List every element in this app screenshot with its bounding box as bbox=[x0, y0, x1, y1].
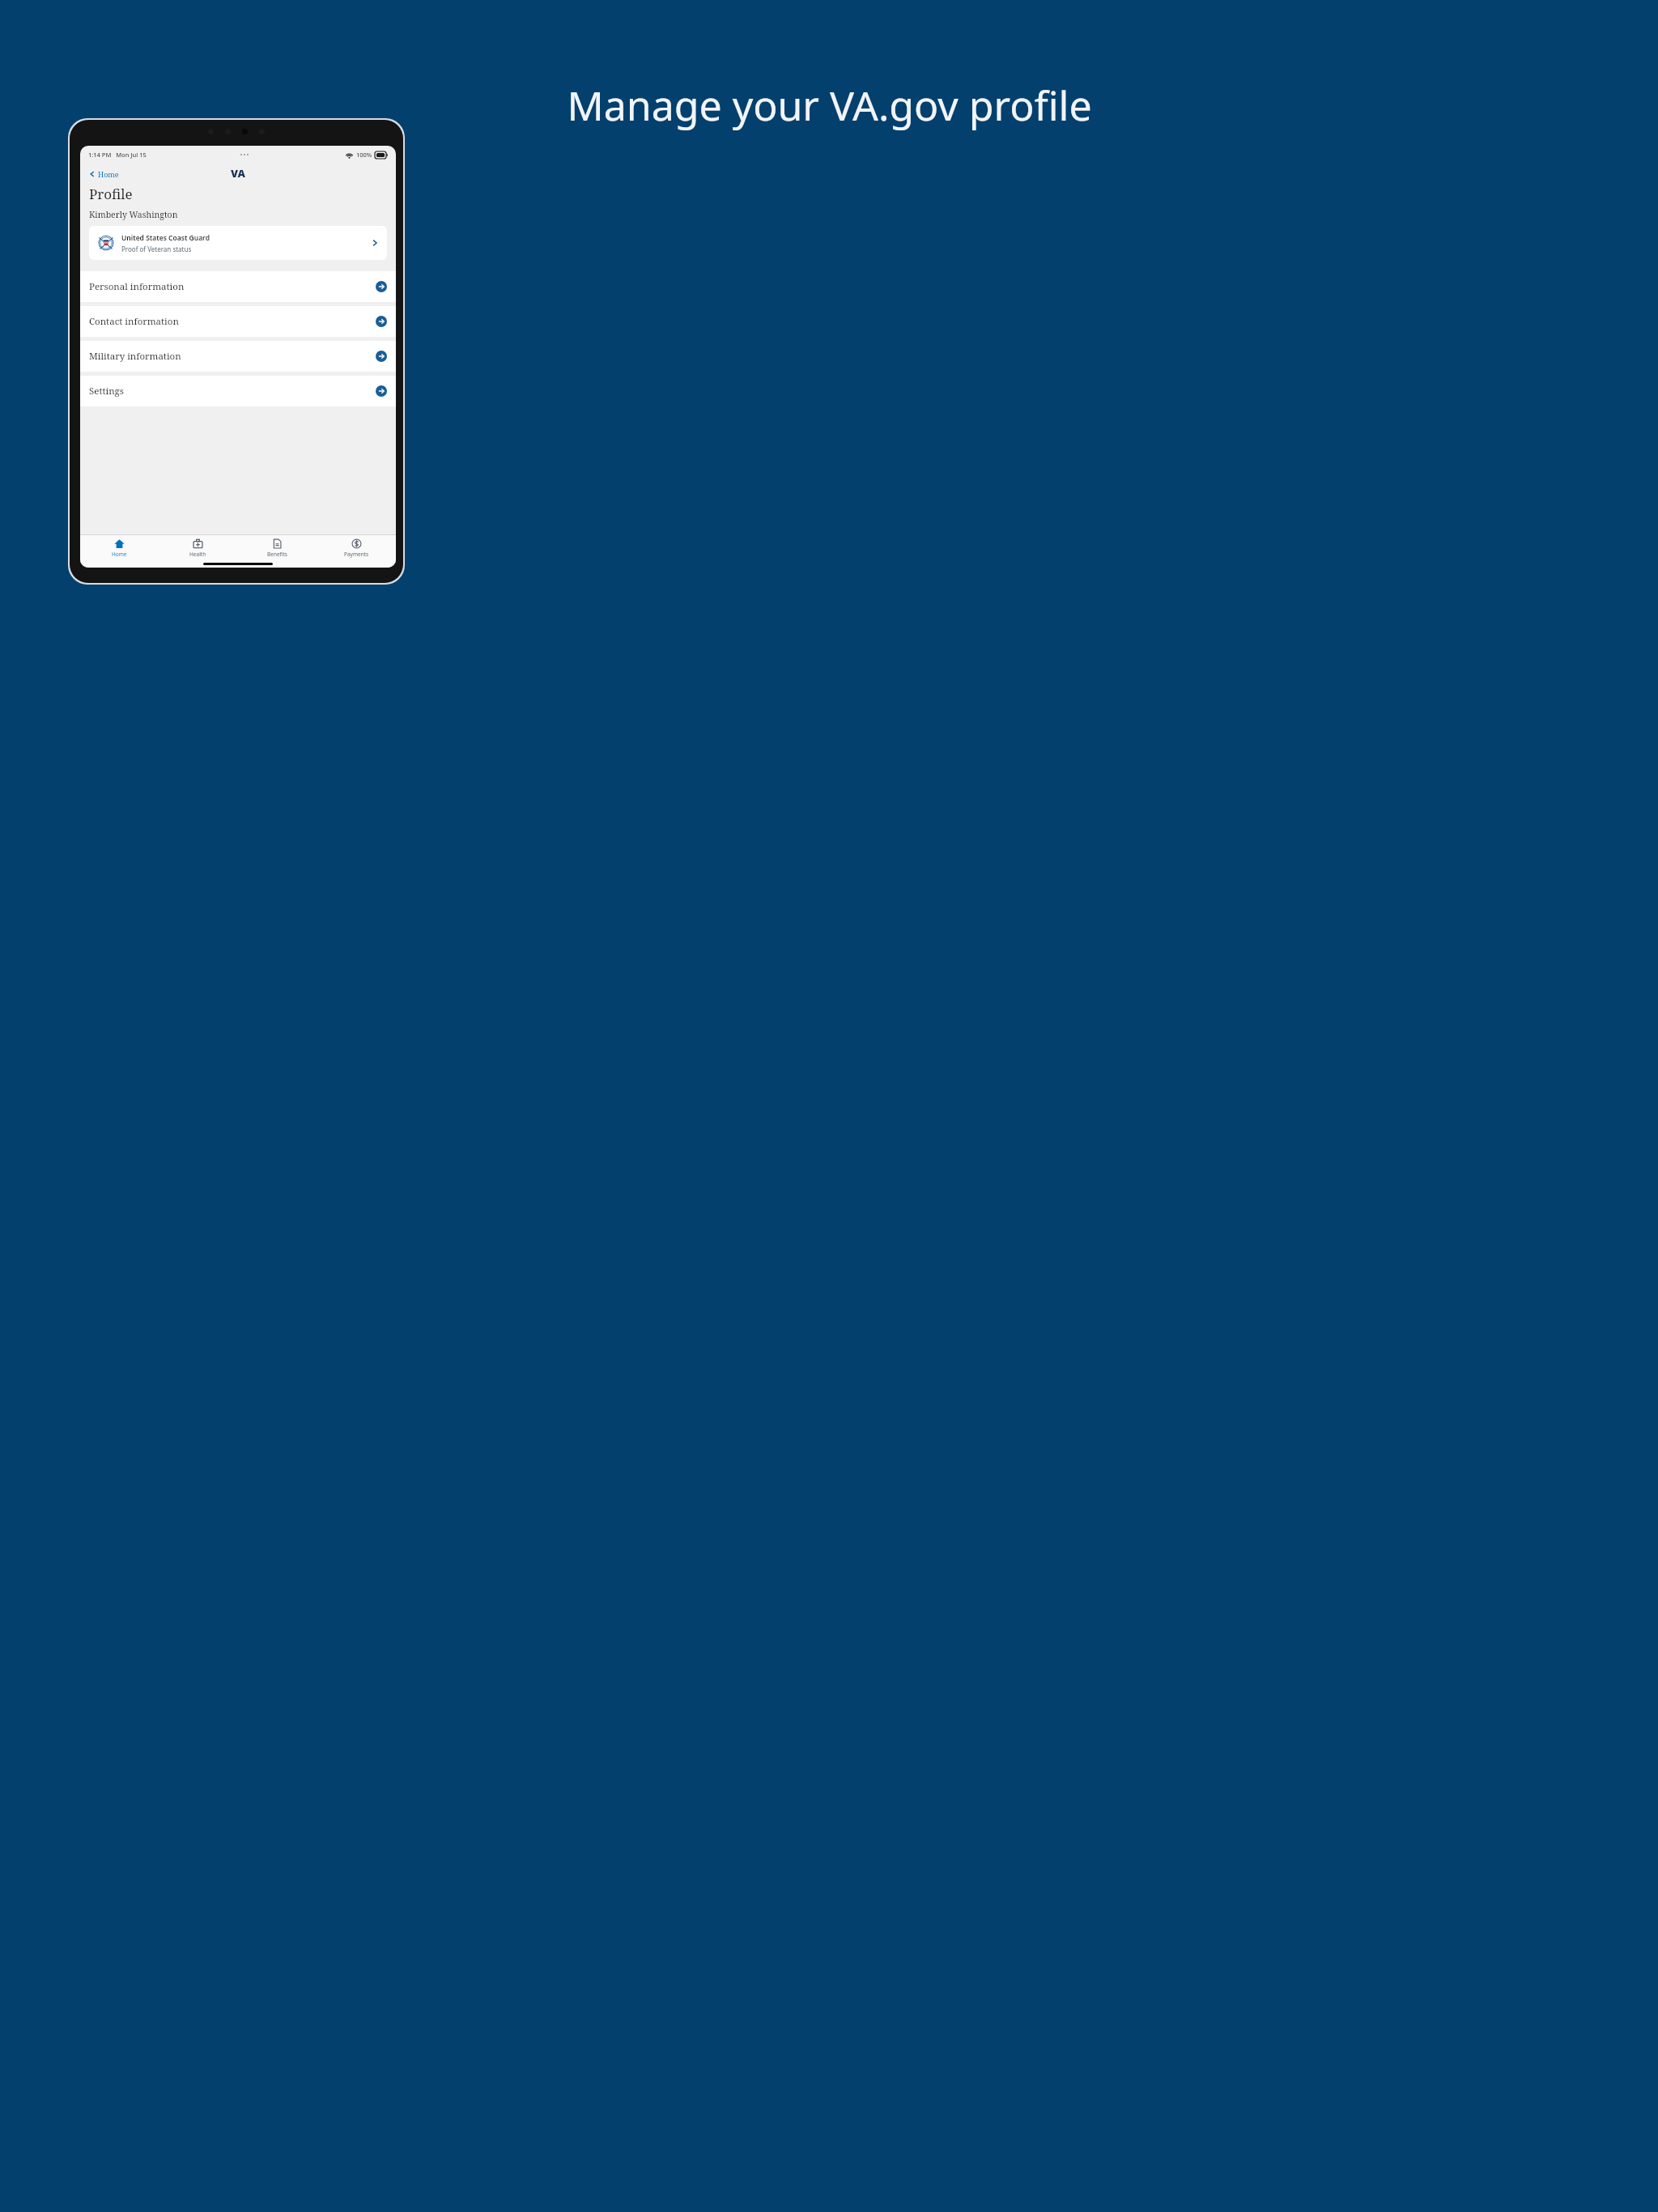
staticText: 100% bbox=[356, 151, 372, 159]
staticText: Home bbox=[112, 551, 127, 558]
staticText: Kimberly Washington bbox=[89, 209, 178, 220]
staticText: Military information bbox=[89, 350, 181, 363]
button[interactable]: Home bbox=[87, 167, 121, 181]
staticText: Personal information bbox=[89, 280, 185, 293]
staticText: Settings bbox=[89, 385, 124, 398]
staticText: Payments bbox=[344, 551, 369, 558]
staticText: VA bbox=[231, 166, 245, 181]
staticText: Contact information bbox=[89, 315, 179, 328]
button[interactable]: Military information bbox=[80, 341, 396, 372]
staticText: Health bbox=[189, 551, 206, 558]
button[interactable]: Home bbox=[80, 535, 159, 568]
staticText: Home bbox=[98, 169, 119, 179]
staticText: Profile bbox=[89, 185, 133, 203]
staticText: United States Coast Guard bbox=[121, 233, 210, 243]
button[interactable]: Health bbox=[159, 535, 237, 568]
button[interactable]: Settings bbox=[80, 376, 396, 406]
button[interactable]: Contact information bbox=[80, 306, 396, 337]
button[interactable]: Payments bbox=[317, 535, 396, 568]
button[interactable]: United States Coast Guard bbox=[89, 226, 387, 260]
staticText: 1:14 PM Mon Jul 15 bbox=[88, 151, 147, 159]
staticText: Proof of Veteran status bbox=[121, 245, 192, 253]
button[interactable]: Personal information bbox=[80, 271, 396, 302]
staticText: Benefits bbox=[267, 551, 287, 558]
staticText: Manage your VA.gov profile bbox=[567, 78, 1092, 133]
button[interactable]: Benefits bbox=[237, 535, 317, 568]
